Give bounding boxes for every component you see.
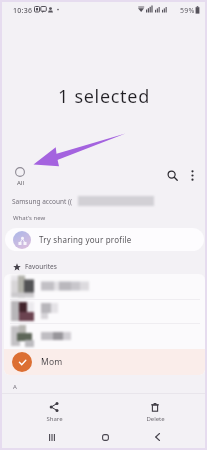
staticText: Delete [146,415,165,423]
button[interactable] [4,299,205,323]
button[interactable]: More options [182,165,203,186]
staticText: 59% [180,6,195,16]
staticText: All [17,179,24,187]
button[interactable]: All [8,162,32,190]
staticText: Share [46,415,63,423]
button[interactable]: Recent apps [2,426,102,448]
button[interactable]: Delete [127,399,183,426]
staticText: Favourites [25,262,57,271]
staticText: Samsung account (( [12,197,72,206]
button[interactable]: Try sharing your profile [5,228,204,251]
button[interactable]: Home [102,426,109,448]
button[interactable] [4,274,205,299]
button[interactable]: Samsung account (( [2,194,205,208]
button[interactable] [4,323,205,349]
staticText: 1 selected [58,84,150,109]
staticText: A [13,383,17,391]
staticText: Mom [41,356,63,368]
staticText: 10:36 [13,6,33,16]
staticText: Try sharing your profile [39,234,132,245]
staticText: What's new [13,214,46,222]
button[interactable]: Search [162,165,183,186]
button[interactable]: Mom [4,349,205,375]
button[interactable]: Share [26,399,82,426]
button[interactable]: Back [109,426,205,448]
